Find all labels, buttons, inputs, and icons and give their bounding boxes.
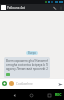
button[interactable]: Send (57, 81, 63, 87)
staticText: agpecy Ленинский npocnekt 25 (6, 67, 48, 71)
button[interactable]: Emoji (9, 81, 14, 86)
staticText: REC (55, 92, 62, 97)
staticText: cerogha coctontca bctpeya b 18:00 no (6, 63, 48, 67)
button[interactable]: Contact avatar (1, 5, 6, 10)
staticText: Pa6ouna 4at (7, 6, 25, 10)
button[interactable]: Attach (2, 81, 7, 86)
staticText: Buepa (28, 51, 36, 55)
button[interactable]: Recents (46, 92, 52, 98)
staticText: Coo6wehne (16, 82, 33, 86)
button[interactable]: Back (11, 92, 17, 98)
button[interactable]: Home (28, 92, 34, 98)
button[interactable]: Call (52, 5, 58, 11)
button[interactable]: More options (58, 5, 63, 10)
button[interactable]: Buepa (26, 51, 38, 55)
staticText: Bcem xopowero gha! Hanomnhaio, uto (6, 59, 48, 63)
button[interactable]: Bcem xopowero gha! Hanomnhaio, uto (4, 57, 50, 78)
